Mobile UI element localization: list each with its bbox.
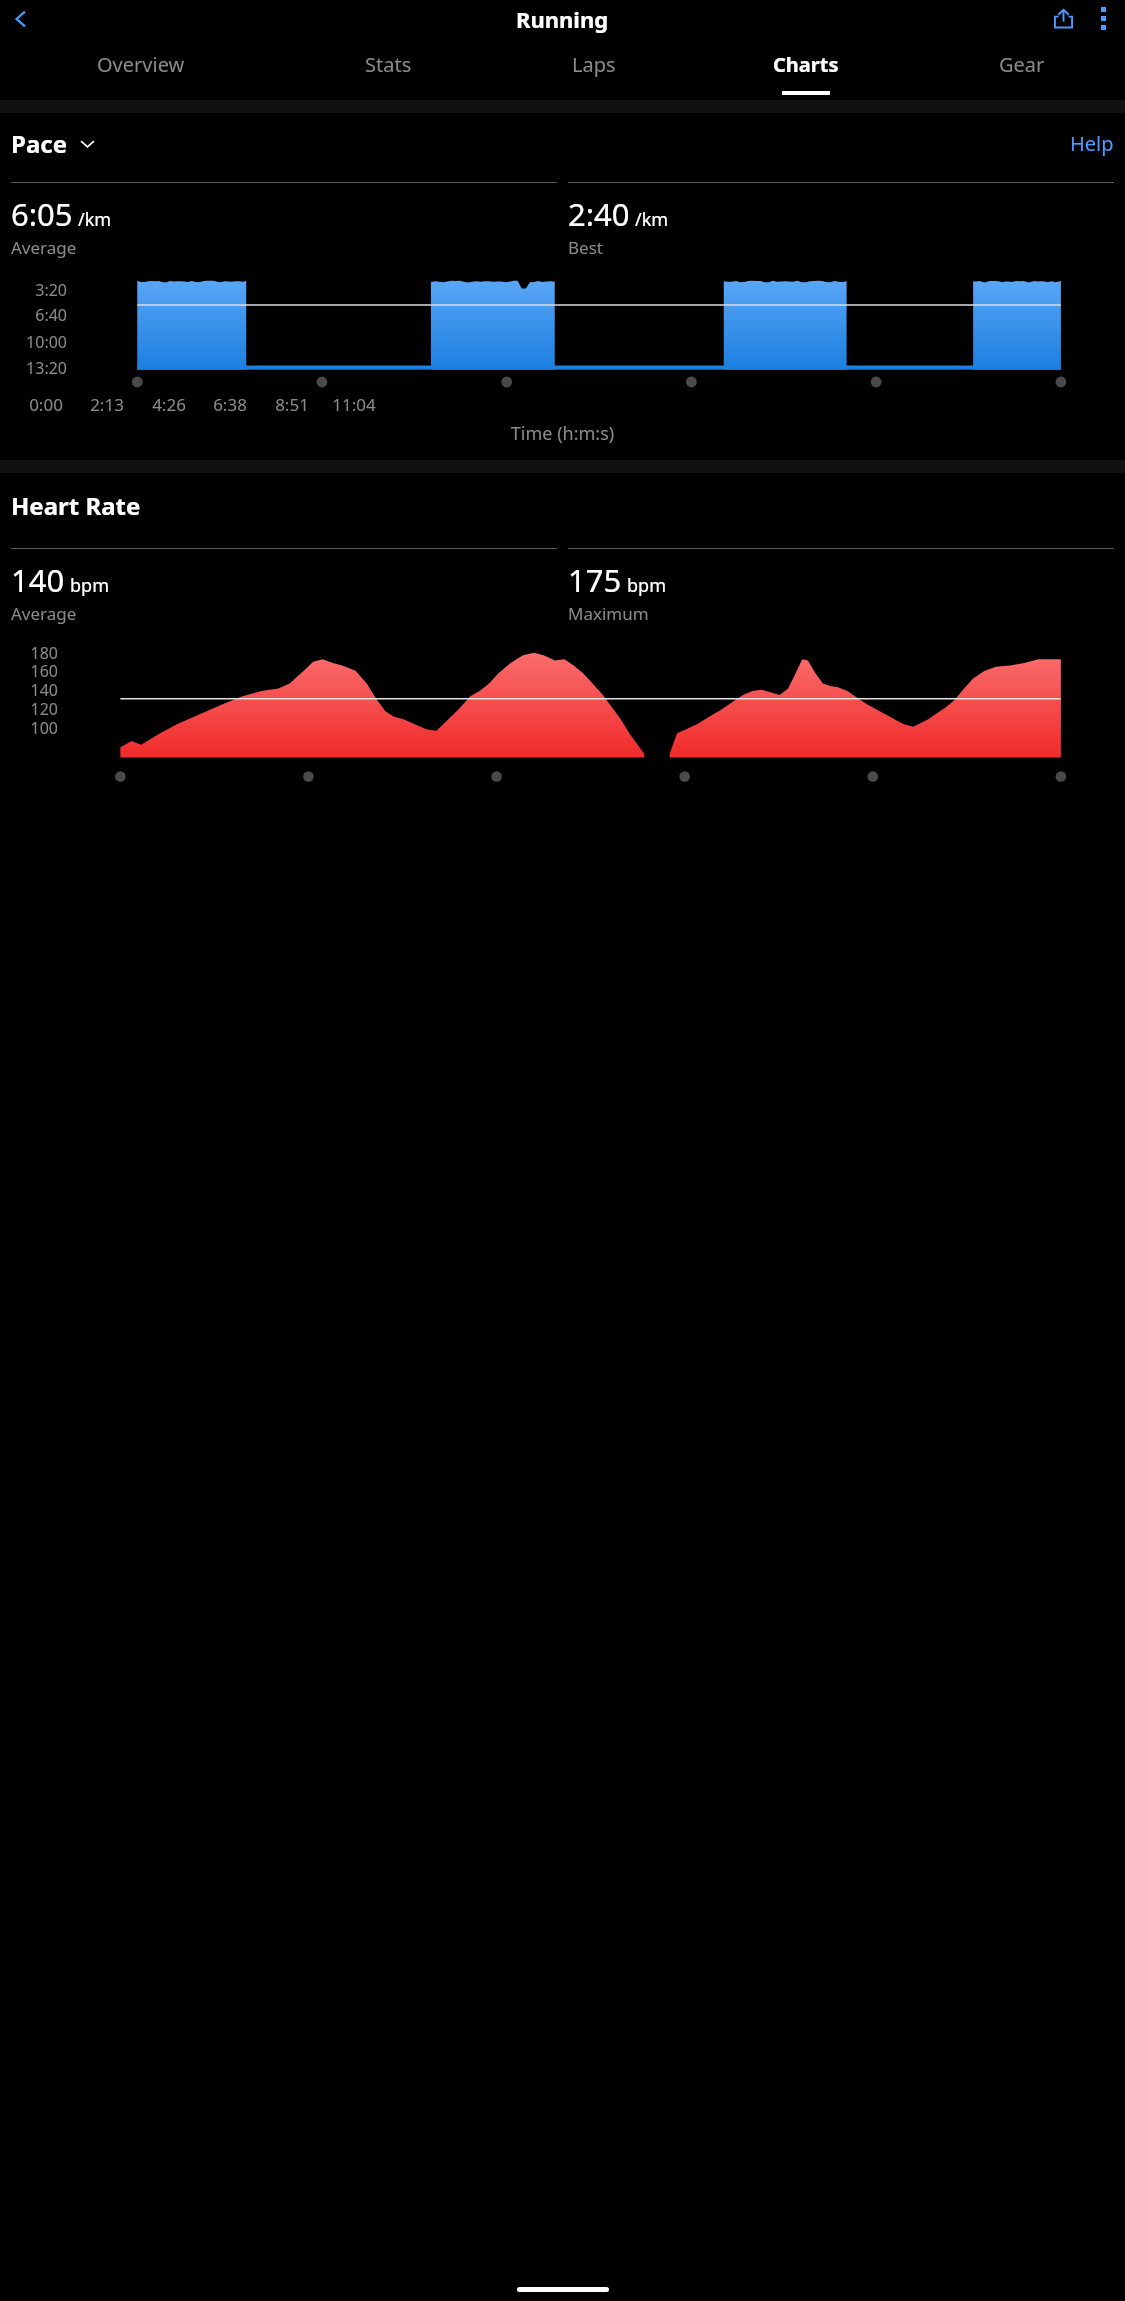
button[interactable]: Gear [918,37,1125,100]
staticText: Pace [11,127,67,160]
staticText: /km [635,207,669,232]
button[interactable]: Overview [0,37,281,100]
staticText: 140 [11,559,65,601]
staticText: 11:04 [324,393,384,416]
staticText: Charts [773,51,839,78]
staticText: 4:26 [139,393,199,416]
staticText: bpm [70,573,109,598]
staticText: 2:13 [77,393,137,416]
staticText: Average [11,236,77,259]
button[interactable]: Share [1043,0,1083,37]
button[interactable]: Laps [495,37,693,100]
button[interactable]: Stats [281,37,495,100]
staticText: Overview [97,51,185,78]
staticText: Stats [365,51,412,78]
staticText: 6:40 [0,304,67,326]
staticText: 6:38 [200,393,260,416]
staticText: 10:00 [0,331,67,353]
button[interactable]: Back [4,2,38,36]
staticText: /km [78,207,112,232]
staticText: 160 [0,660,58,682]
button[interactable]: Charts [693,37,918,100]
staticText: Heart Rate [11,489,141,522]
staticText: bpm [627,573,666,598]
staticText: Running [516,4,609,34]
staticText: 3:20 [0,279,67,301]
staticText: 0:00 [16,393,76,416]
staticText: 180 [0,642,58,664]
staticText: 13:20 [0,357,67,379]
staticText: Help [1070,130,1114,157]
staticText: 6:05 [11,193,73,235]
button[interactable]: Pace [11,127,96,160]
staticText: Gear [999,51,1045,78]
staticText: Best [568,236,603,259]
staticText: Time (h:m:s) [0,421,1125,446]
staticText: 100 [0,717,58,739]
button[interactable]: More options [1083,0,1123,37]
button[interactable]: Help [1070,130,1114,157]
staticText: 120 [0,698,58,720]
staticText: 140 [0,679,58,701]
staticText: Average [11,602,77,625]
staticText: Laps [572,51,616,78]
staticText: 2:40 [568,193,630,235]
staticText: 175 [568,559,622,601]
staticText: 8:51 [262,393,322,416]
staticText: Maximum [568,602,649,625]
